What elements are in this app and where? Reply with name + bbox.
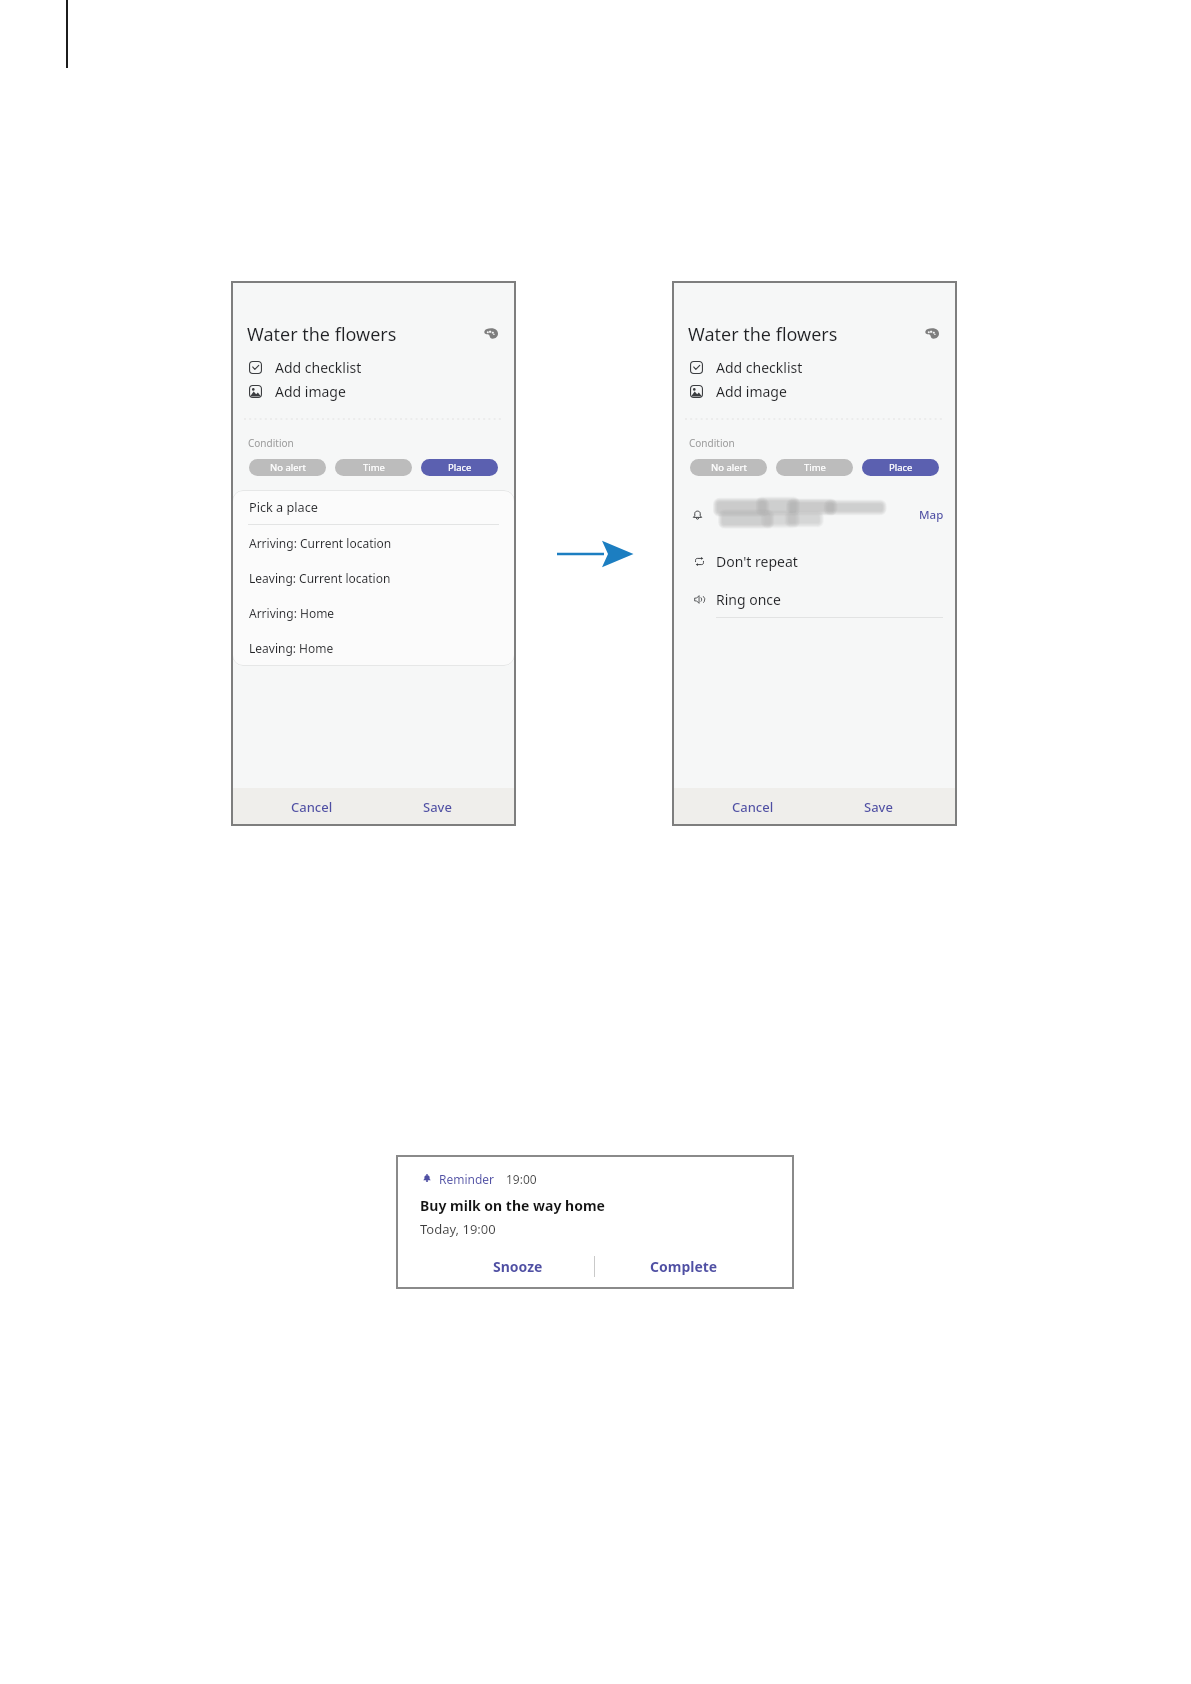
button[interactable]: Place [862,459,939,476]
button[interactable]: Time [776,459,853,476]
button[interactable]: Add image [680,379,942,403]
staticText: Today, 19:00 [420,1220,496,1238]
staticText: Arriving: Current location [249,535,392,551]
staticText: Time [804,461,826,474]
staticText: Place [448,461,472,474]
button[interactable]: No alert [690,459,767,476]
button[interactable]: Cancel [715,788,791,826]
staticText: Don't repeat [716,552,798,571]
staticText: Snooze [493,1257,543,1276]
staticText: Add image [716,382,787,401]
staticText: Cancel [732,798,774,816]
button[interactable]: Don't repeat [680,549,942,573]
staticText: Leaving: Current location [249,570,391,586]
staticText: Arriving: Home [249,605,335,621]
staticText: Cancel [291,798,333,816]
button[interactable]: Change colour [478,321,504,345]
button[interactable]: Add checklist [239,355,501,379]
staticText: Ring once [716,590,781,609]
staticText: Condition [689,436,735,450]
staticText: Water the flowers [688,322,838,347]
button[interactable]: Complete [609,1250,759,1283]
button[interactable]: Pick a place [232,496,515,517]
button[interactable]: Leaving: Home [232,630,515,665]
staticText: Add checklist [716,358,803,377]
button[interactable]: No alert [249,459,326,476]
staticText: No alert [711,461,747,474]
staticText: Add checklist [275,358,362,377]
staticText: Complete [650,1257,718,1276]
staticText: Buy milk on the way home [420,1196,605,1215]
button[interactable]: Place [421,459,498,476]
staticText: Leaving: Home [249,640,334,656]
staticText: Add image [275,382,346,401]
button[interactable]: Arriving: Home [232,595,515,630]
staticText: Water the flowers [247,322,397,347]
staticText: 19:00 [506,1171,537,1187]
button[interactable]: Save [399,788,475,826]
staticText: Map [919,507,944,523]
button[interactable]: Add image [239,379,501,403]
button[interactable]: Ring once [680,587,942,611]
button[interactable]: Leaving: Current location [232,560,515,595]
staticText: Save [864,798,893,816]
staticText: Time [363,461,385,474]
staticText: Save [423,798,452,816]
staticText: Reminder [439,1171,495,1187]
button[interactable]: Add checklist [680,355,942,379]
button[interactable]: Arriving: Current location [232,525,515,560]
button[interactable]: Map [680,493,950,537]
staticText: Place [889,461,913,474]
button[interactable]: Snooze [443,1250,593,1283]
button[interactable]: Time [335,459,412,476]
staticText: No alert [270,461,306,474]
button[interactable]: Save [840,788,916,826]
staticText: Condition [248,436,294,450]
button[interactable]: Cancel [274,788,350,826]
staticText: Pick a place [249,498,318,515]
button[interactable]: Change colour [919,321,945,345]
